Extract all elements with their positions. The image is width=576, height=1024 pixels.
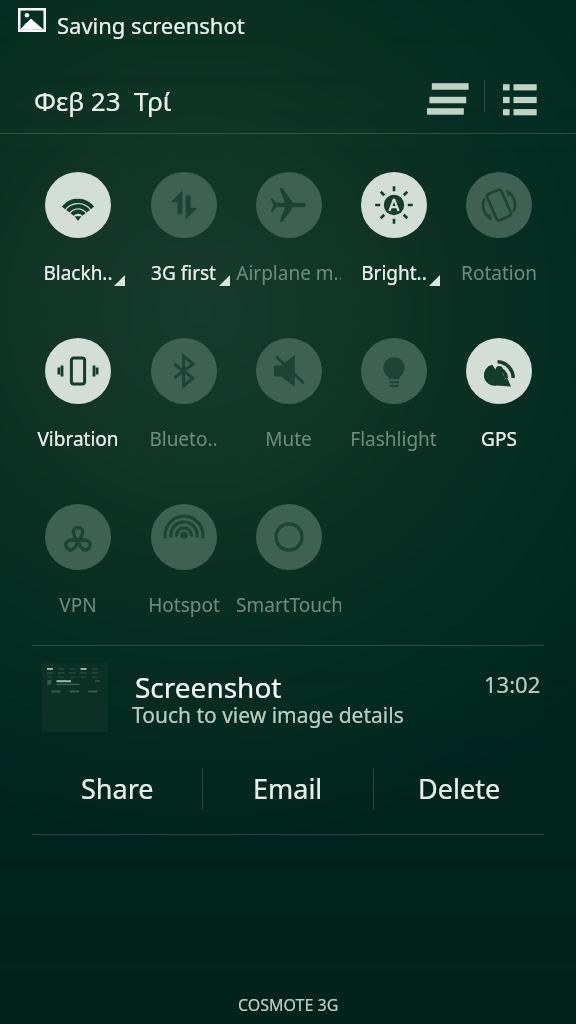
staticText: Blueto.. [149, 426, 218, 452]
staticText: Hotspot [148, 592, 220, 618]
staticText: COSMOTE 3G [238, 994, 339, 1016]
staticText: Touch to view image details [132, 701, 404, 730]
button[interactable]: Mute [236, 309, 341, 475]
staticText: Rotation [461, 260, 537, 286]
staticText: Mute [265, 426, 312, 452]
button[interactable]: Notifications [494, 70, 552, 124]
button[interactable]: Hotspot [131, 475, 236, 641]
button[interactable]: 3G first [131, 143, 236, 309]
button[interactable]: Blackh.. [25, 143, 131, 309]
staticText: Saving screenshot [57, 10, 245, 40]
button[interactable]: Blueto.. [131, 309, 236, 475]
staticText: Φεβ 23 Τρί [34, 83, 172, 118]
button[interactable]: Airplane m.. [236, 143, 341, 309]
button[interactable]: Email [203, 745, 373, 831]
staticText: VPN [59, 592, 97, 618]
staticText: Airplane m.. [236, 260, 341, 286]
button[interactable]: Delete [374, 745, 544, 831]
staticText: Bright.. [361, 260, 427, 286]
button[interactable]: Flashlight [341, 309, 446, 475]
staticText: Delete [418, 770, 501, 807]
staticText: 13:02 [484, 669, 541, 699]
staticText: 3G first [151, 260, 216, 286]
button[interactable]: VPN [25, 475, 131, 641]
button[interactable]: Rotation [446, 143, 551, 309]
button[interactable]: Quick settings [418, 70, 476, 124]
button[interactable]: Bright.. [341, 143, 446, 309]
staticText: GPS [481, 426, 517, 452]
staticText: Screenshot [135, 668, 282, 706]
button[interactable]: GPS [446, 309, 551, 475]
button[interactable]: Vibration [25, 309, 131, 475]
staticText: SmartTouch [236, 592, 341, 618]
staticText: Share [81, 770, 154, 807]
button[interactable]: Screenshot [0, 650, 576, 742]
button[interactable]: Share [32, 745, 202, 831]
staticText: Email [253, 770, 323, 807]
button[interactable]: SmartTouch [236, 475, 341, 641]
staticText: Flashlight [350, 426, 437, 452]
staticText: Blackh.. [43, 260, 113, 286]
staticText: Vibration [37, 426, 119, 452]
